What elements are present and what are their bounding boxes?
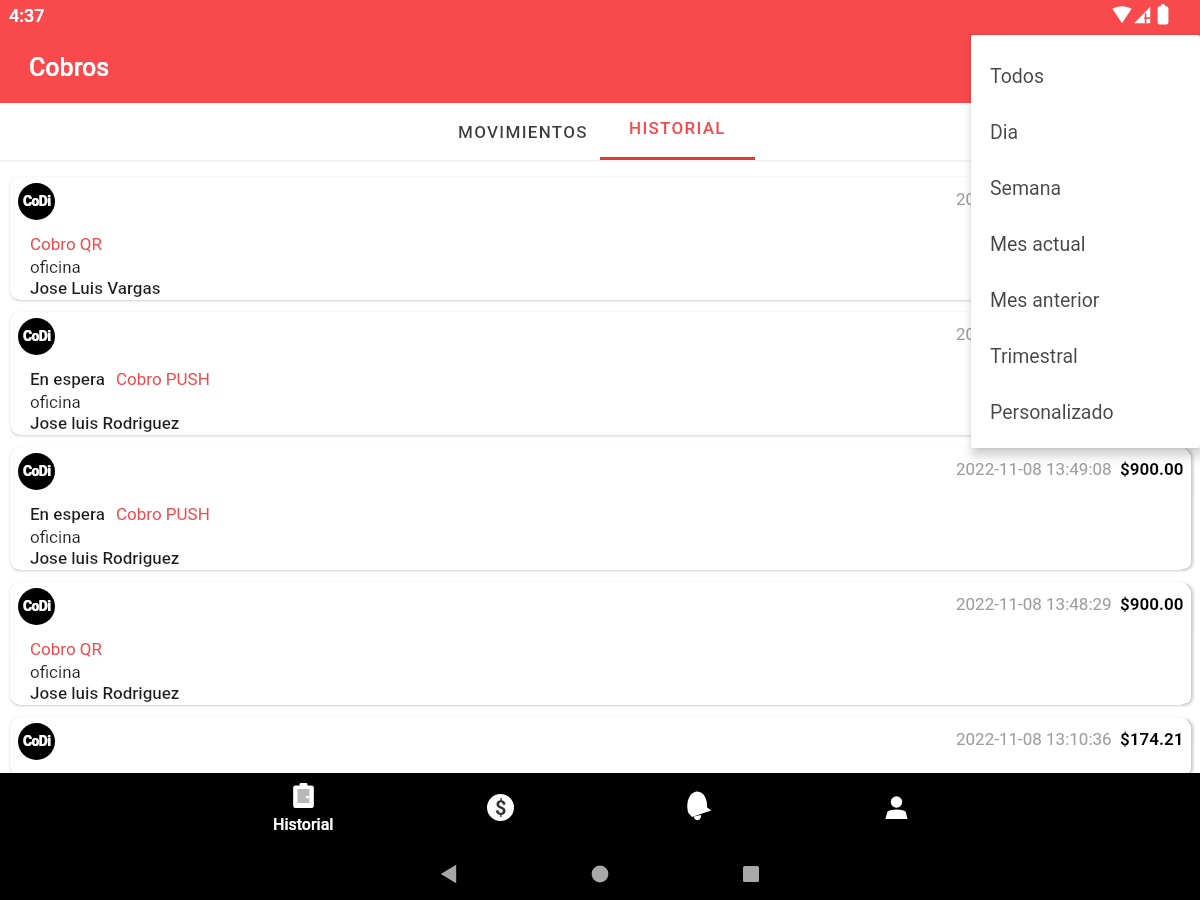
button[interactable]: Trimestral (971, 328, 1200, 384)
staticText: Dia (990, 121, 1019, 144)
staticText: $174.21 (1120, 729, 1184, 749)
staticText: 2022-11-08 13:10:36 (956, 729, 1112, 749)
staticText: En espera (30, 369, 105, 389)
button[interactable]: Back (428, 852, 472, 896)
button[interactable]: CoDi (10, 312, 1190, 435)
button[interactable]: Recents (729, 852, 773, 896)
staticText: 2022-11-08 13:49:08 (956, 459, 1112, 479)
staticText: Mes anterior (990, 289, 1100, 312)
staticText: Personalizado (990, 401, 1114, 424)
staticText: Historial (273, 815, 334, 834)
staticText: Jose luis Rodriguez (30, 683, 180, 703)
staticText: Cobro QR (30, 234, 102, 254)
button[interactable]: Historial (205, 773, 402, 845)
staticText: oficina (30, 257, 81, 277)
staticText: Cobro PUSH (116, 504, 210, 524)
button[interactable]: CoDi (10, 717, 1190, 773)
button[interactable]: Todos (971, 48, 1200, 104)
staticText: Todos (990, 65, 1044, 88)
staticText: CoDi (23, 598, 51, 614)
button[interactable]: CoDi (10, 582, 1190, 705)
button[interactable]: CoDi (10, 177, 1190, 300)
staticText: Jose luis Rodriguez (30, 413, 180, 433)
button[interactable]: Dia (971, 104, 1200, 160)
button[interactable]: Personalizado (971, 384, 1200, 440)
staticText: CoDi (23, 463, 51, 479)
button[interactable]: Mes actual (971, 216, 1200, 272)
staticText: 2022-11-08 13:52:40 (956, 324, 1112, 344)
staticText: $900.00 (1120, 459, 1184, 479)
staticText: oficina (30, 392, 81, 412)
staticText: 2022-11-08 13:48:29 (956, 594, 1112, 614)
staticText: oficina (30, 527, 81, 547)
button[interactable]: Perfil (797, 773, 995, 845)
staticText: CoDi (23, 733, 51, 749)
staticText: 4:37 (9, 5, 45, 26)
staticText: En espera (30, 504, 105, 524)
staticText: Cobros (29, 53, 110, 82)
staticText: $ (495, 796, 507, 819)
staticText: Cobro QR (30, 639, 102, 659)
staticText: CoDi (23, 193, 51, 209)
button[interactable]: MOVIMIENTOS (445, 103, 600, 160)
staticText: Semana (990, 177, 1062, 200)
button[interactable]: Home (578, 852, 622, 896)
staticText: Cobro PUSH (116, 369, 210, 389)
staticText: Trimestral (990, 345, 1078, 368)
staticText: 2022-11-08 14:02:11 (956, 189, 1112, 209)
button[interactable]: Mes anterior (971, 272, 1200, 328)
staticText: Mes actual (990, 233, 1086, 256)
button[interactable]: Notificaciones (599, 773, 797, 845)
staticText: MOVIMIENTOS (458, 122, 588, 142)
button[interactable]: Cobros (402, 773, 599, 845)
staticText: Jose luis Rodriguez (30, 548, 180, 568)
staticText: Jose Luis Vargas (30, 278, 161, 298)
staticText: CoDi (23, 328, 51, 344)
button[interactable]: CoDi (10, 447, 1190, 570)
staticText: $900.00 (1120, 594, 1184, 614)
staticText: oficina (30, 662, 81, 682)
button[interactable]: HISTORIAL (600, 103, 755, 160)
button[interactable]: Semana (971, 160, 1200, 216)
staticText: HISTORIAL (629, 118, 726, 138)
